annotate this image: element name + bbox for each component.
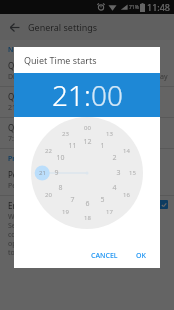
staticText: 21 [52, 76, 84, 114]
staticText: 21 [39, 169, 46, 177]
staticText: 8 [58, 183, 63, 193]
staticText: 2 [112, 153, 117, 163]
staticText: OK [136, 251, 146, 261]
staticText: 13 [106, 130, 113, 138]
button[interactable]: Quiet Time starts [0, 87, 174, 117]
staticText: Email access [8, 200, 55, 211]
button[interactable]: Back [4, 17, 24, 37]
staticText: 5 [100, 195, 105, 205]
button[interactable]: Quiet Time ends [0, 118, 174, 148]
staticText: 9 [54, 168, 59, 178]
staticText: : [84, 76, 91, 114]
staticText: 00 [84, 124, 91, 132]
staticText: 14 [123, 147, 130, 155]
button[interactable]: Quiet Time [0, 56, 174, 86]
staticText: 7:00 [8, 134, 22, 144]
staticText: 19 [62, 208, 69, 216]
staticText: Quiet Time starts [24, 54, 97, 66]
staticText: 20 [45, 191, 52, 199]
staticText: 11:48 [147, 1, 171, 13]
button[interactable]: CANCEL [85, 248, 124, 264]
staticText: Quiet Time starts [8, 91, 73, 102]
staticText: 17 [106, 208, 113, 216]
button[interactable]: 21 [52, 76, 84, 114]
staticText: 15 [129, 169, 136, 177]
staticText: Personalize your experience [8, 181, 101, 191]
button[interactable]: Personalization [0, 165, 174, 195]
staticText: 23 [62, 130, 69, 138]
staticText: 00 [91, 76, 123, 114]
staticText: 1 [100, 141, 105, 151]
staticText: Quiet Time [8, 60, 50, 71]
staticText: Quiet Time ends [8, 122, 70, 133]
button[interactable]: OK [130, 248, 152, 264]
staticText: 21:00 [8, 103, 26, 113]
staticText: 16 [123, 191, 130, 199]
staticText: Personalization [8, 169, 66, 180]
staticText: 10 [56, 153, 65, 163]
staticText: 22 [45, 147, 52, 155]
button[interactable]: Email access toggle [159, 200, 168, 209]
staticText: 6 [85, 199, 90, 209]
staticText: CANCEL [91, 251, 118, 261]
staticText: 71% [129, 4, 139, 11]
staticText: 3 [116, 168, 121, 178]
staticText: 7 [70, 195, 75, 205]
staticText: Disable notifications during a certain t… [8, 72, 168, 82]
staticText: Notifications [8, 45, 51, 55]
staticText: Privacy [8, 154, 32, 164]
staticText: 11 [68, 141, 77, 151]
button[interactable]: 00 [91, 76, 123, 114]
staticText: 18 [84, 214, 91, 222]
button[interactable]: Email access [0, 196, 174, 261]
staticText: 4 [112, 183, 117, 193]
staticText: We need permission from you to allow our… [8, 212, 155, 257]
staticText: General settings [28, 21, 98, 33]
staticText: 12 [83, 137, 92, 147]
